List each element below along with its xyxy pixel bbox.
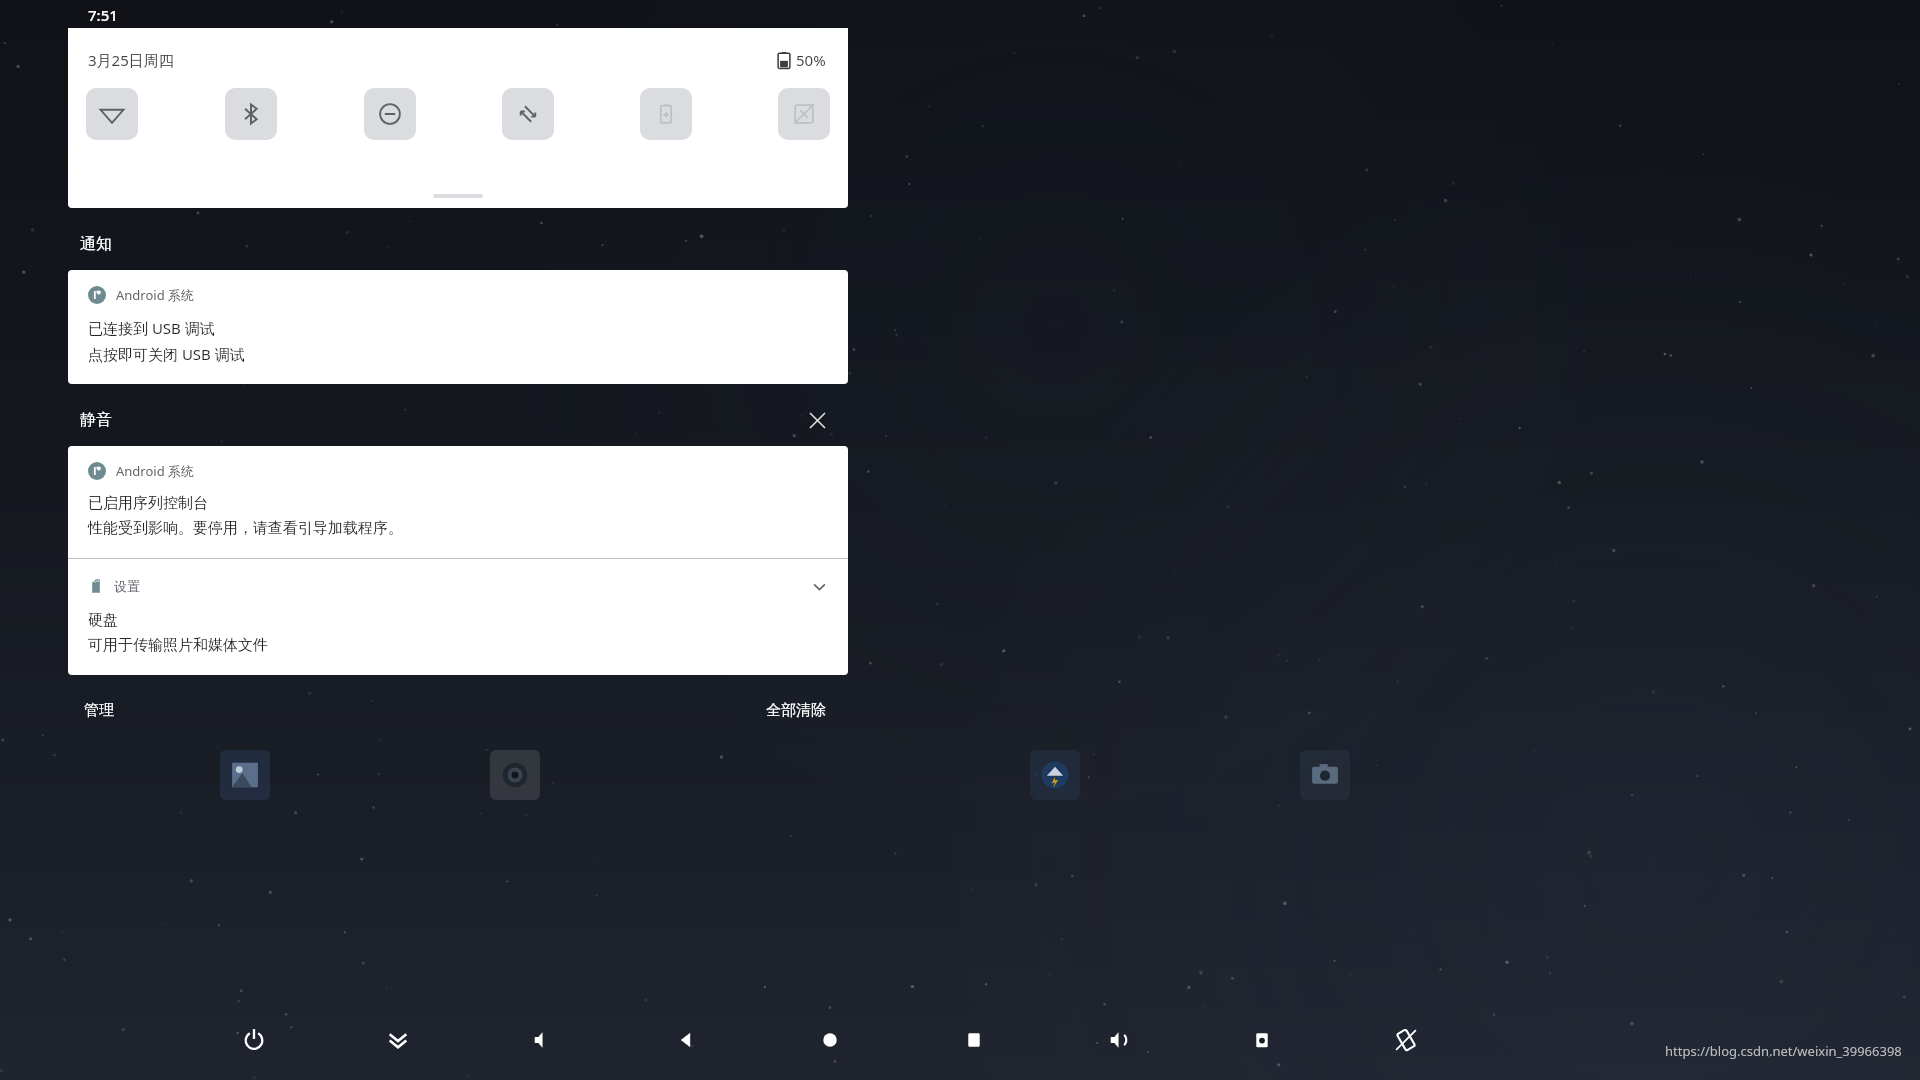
button[interactable]: Wi-Fi xyxy=(86,88,138,140)
button[interactable]: App xyxy=(220,750,270,800)
button[interactable]: 全部清除 xyxy=(762,697,830,724)
button[interactable]: App xyxy=(1030,750,1080,800)
button[interactable]: 管理 xyxy=(80,697,118,724)
button[interactable]: Rotate xyxy=(1384,1018,1428,1062)
button[interactable]: App xyxy=(1300,750,1350,800)
staticText: 点按即可关闭 USB 调试 xyxy=(88,344,245,364)
staticText: Android 系统 xyxy=(116,286,195,304)
button[interactable]: Bluetooth xyxy=(225,88,277,140)
button[interactable]: Android 系统 xyxy=(68,446,848,558)
button[interactable]: Nearby share xyxy=(778,88,830,140)
staticText: 管理 xyxy=(84,701,114,720)
button[interactable]: Collapse xyxy=(376,1018,420,1062)
button[interactable]: Android 系统 xyxy=(68,270,848,384)
staticText: 硬盘 xyxy=(88,611,118,630)
staticText: 3月25日周四 xyxy=(88,50,174,70)
staticText: 性能受到影响。要停用，请查看引导加载程序。 xyxy=(88,519,403,538)
staticText: 50% xyxy=(796,50,826,70)
button[interactable]: Power xyxy=(232,1018,276,1062)
button[interactable]: Battery saver xyxy=(640,88,692,140)
staticText: 全部清除 xyxy=(766,701,826,720)
button[interactable]: Volume up xyxy=(1096,1018,1140,1062)
button[interactable]: Back xyxy=(664,1018,708,1062)
button[interactable]: App xyxy=(490,750,540,800)
staticText: 已连接到 USB 调试 xyxy=(88,318,215,338)
button[interactable]: Auto-rotate xyxy=(502,88,554,140)
staticText: 静音 xyxy=(80,410,112,430)
staticText: https://blog.csdn.net/weixin_39966398 xyxy=(1665,1042,1902,1060)
button[interactable]: Do not disturb xyxy=(364,88,416,140)
button[interactable]: Home xyxy=(808,1018,852,1062)
staticText: 7:51 xyxy=(88,5,118,25)
button[interactable]: Volume down xyxy=(520,1018,564,1062)
staticText: 设置 xyxy=(114,578,140,594)
button[interactable]: 设置 xyxy=(68,559,848,675)
button[interactable]: Expand xyxy=(806,573,832,599)
staticText: Android 系统 xyxy=(116,462,195,480)
staticText: 已启用序列控制台 xyxy=(88,494,208,513)
staticText: 可用于传输照片和媒体文件 xyxy=(88,636,268,655)
staticText: 通知 xyxy=(80,234,112,254)
button[interactable]: Clear silent notifications xyxy=(804,407,830,433)
button[interactable]: Screenshot xyxy=(1240,1018,1284,1062)
button[interactable]: Recents xyxy=(952,1018,996,1062)
